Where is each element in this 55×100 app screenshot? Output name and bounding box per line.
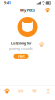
- button[interactable]: Home: [0, 86, 14, 96]
- staticText: purring sounds: [9, 46, 33, 51]
- button[interactable]: Profile: [41, 86, 55, 96]
- staticText: Listening for: [11, 41, 31, 45]
- staticText: Start: [17, 54, 24, 59]
- button[interactable]: Add a pet: [43, 6, 52, 14]
- button[interactable]: Feeding: [14, 86, 28, 96]
- button[interactable]: Pet avatar: [17, 17, 37, 37]
- staticText: My Pets: [20, 7, 35, 13]
- button[interactable]: Health: [27, 86, 41, 96]
- staticText: 9:41: [4, 1, 11, 5]
- button[interactable]: Start: [13, 54, 28, 59]
